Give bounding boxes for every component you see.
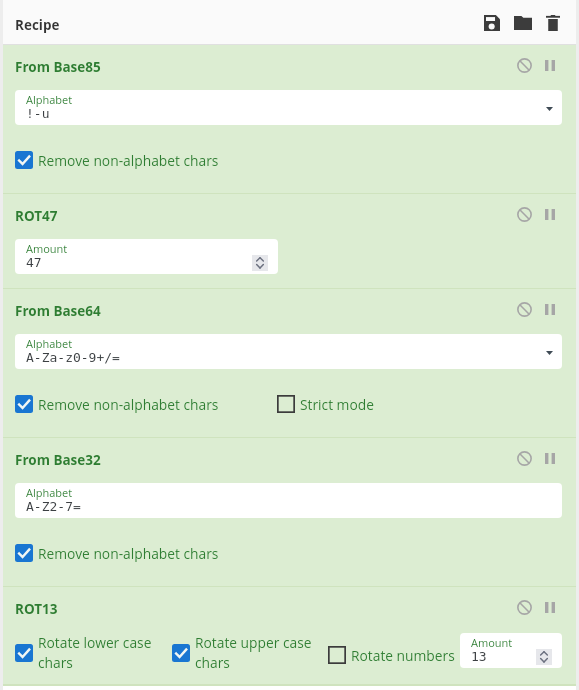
button[interactable]: Disable operation bbox=[517, 451, 532, 466]
button[interactable]: Alphabet bbox=[15, 483, 562, 518]
staticText: From Base64 bbox=[15, 302, 101, 320]
staticText: !-u bbox=[26, 106, 50, 121]
button[interactable]: Save recipe bbox=[484, 15, 500, 31]
staticText: 47 bbox=[26, 255, 42, 270]
button[interactable]: Rotate lower case chars bbox=[15, 633, 158, 675]
staticText: Rotate upper case chars bbox=[195, 633, 315, 672]
button[interactable]: Rotate numbers bbox=[328, 646, 455, 664]
staticText: From Base32 bbox=[15, 451, 101, 469]
button[interactable]: Amount bbox=[460, 633, 562, 668]
button[interactable]: Rotate upper case chars bbox=[172, 633, 315, 675]
staticText: Remove non-alphabet chars bbox=[38, 151, 219, 169]
staticText: From Base85 bbox=[15, 58, 101, 76]
button[interactable]: Remove non-alphabet chars bbox=[15, 544, 219, 562]
button[interactable]: Disable operation bbox=[517, 58, 532, 73]
button[interactable]: Strict mode bbox=[277, 395, 374, 413]
button[interactable]: Alphabet bbox=[15, 334, 562, 369]
staticText: Remove non-alphabet chars bbox=[38, 395, 219, 413]
staticText: Alphabet bbox=[26, 336, 73, 351]
button[interactable]: Pause operation bbox=[545, 602, 555, 613]
staticText: Recipe bbox=[15, 16, 60, 34]
staticText: Rotate numbers bbox=[351, 646, 455, 664]
staticText: Amount bbox=[471, 635, 513, 650]
button[interactable]: Remove non-alphabet chars bbox=[15, 151, 219, 169]
staticText: 13 bbox=[471, 649, 487, 664]
staticText: Strict mode bbox=[300, 395, 374, 413]
staticText: A-Z2-7= bbox=[26, 499, 81, 514]
staticText: A-Za-z0-9+/= bbox=[26, 350, 120, 365]
button[interactable]: Disable operation bbox=[517, 600, 532, 615]
staticText: ROT13 bbox=[15, 600, 58, 618]
button[interactable]: Clear recipe bbox=[546, 15, 560, 31]
staticText: Alphabet bbox=[26, 92, 73, 107]
staticText: ROT47 bbox=[15, 207, 58, 225]
staticText: Remove non-alphabet chars bbox=[38, 544, 219, 562]
button[interactable]: Remove non-alphabet chars bbox=[15, 395, 219, 413]
button[interactable]: Amount bbox=[15, 239, 278, 274]
button[interactable]: Disable operation bbox=[517, 207, 532, 222]
staticText: Rotate lower case chars bbox=[38, 633, 158, 672]
button[interactable]: Pause operation bbox=[545, 60, 555, 71]
button[interactable]: Pause operation bbox=[545, 304, 555, 315]
staticText: Amount bbox=[26, 241, 68, 256]
staticText: Alphabet bbox=[26, 485, 73, 500]
button[interactable]: Pause operation bbox=[545, 453, 555, 464]
button[interactable]: Disable operation bbox=[517, 302, 532, 317]
button[interactable]: Pause operation bbox=[545, 209, 555, 220]
button[interactable]: Alphabet bbox=[15, 90, 562, 125]
button[interactable]: Load recipe bbox=[514, 16, 532, 30]
